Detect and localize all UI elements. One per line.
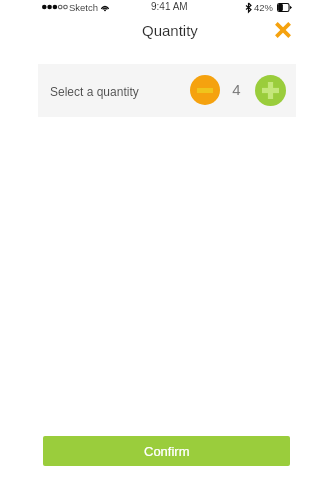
staticText: Quantity [142,22,198,39]
staticText: 42% [254,2,274,13]
button[interactable]: Confirm [43,436,290,466]
staticText: Select a quantity [50,85,139,98]
button[interactable]: Decrease quantity [190,75,220,105]
staticText: Confirm [144,444,190,459]
button[interactable]: Close [270,17,296,43]
button[interactable]: Increase quantity [255,75,286,106]
staticText: 9:41 AM [151,1,188,12]
staticText: Sketch [69,2,99,13]
staticText: 4 [232,81,241,98]
